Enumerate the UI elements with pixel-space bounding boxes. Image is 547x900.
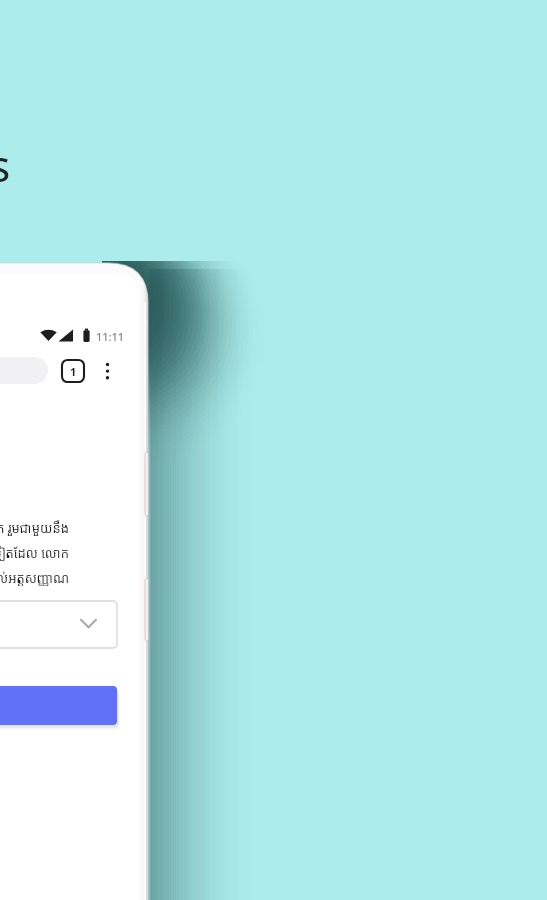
staticText: in many countries (0, 80, 11, 195)
button[interactable]: Select account type (0, 601, 117, 648)
staticText: 11:11 (96, 329, 125, 344)
button[interactable]: Switch tabs, 1 open (62, 360, 84, 382)
button[interactable]: More options (98, 358, 118, 384)
staticText: សូមជ្រើសរើសប្រភេទគណនីដែលអ្នកចង់បើក រួមជា… (0, 519, 69, 586)
staticText: 1 (70, 364, 77, 379)
button[interactable]: Search or type URL (0, 357, 48, 384)
button[interactable]: Continue (0, 686, 117, 725)
